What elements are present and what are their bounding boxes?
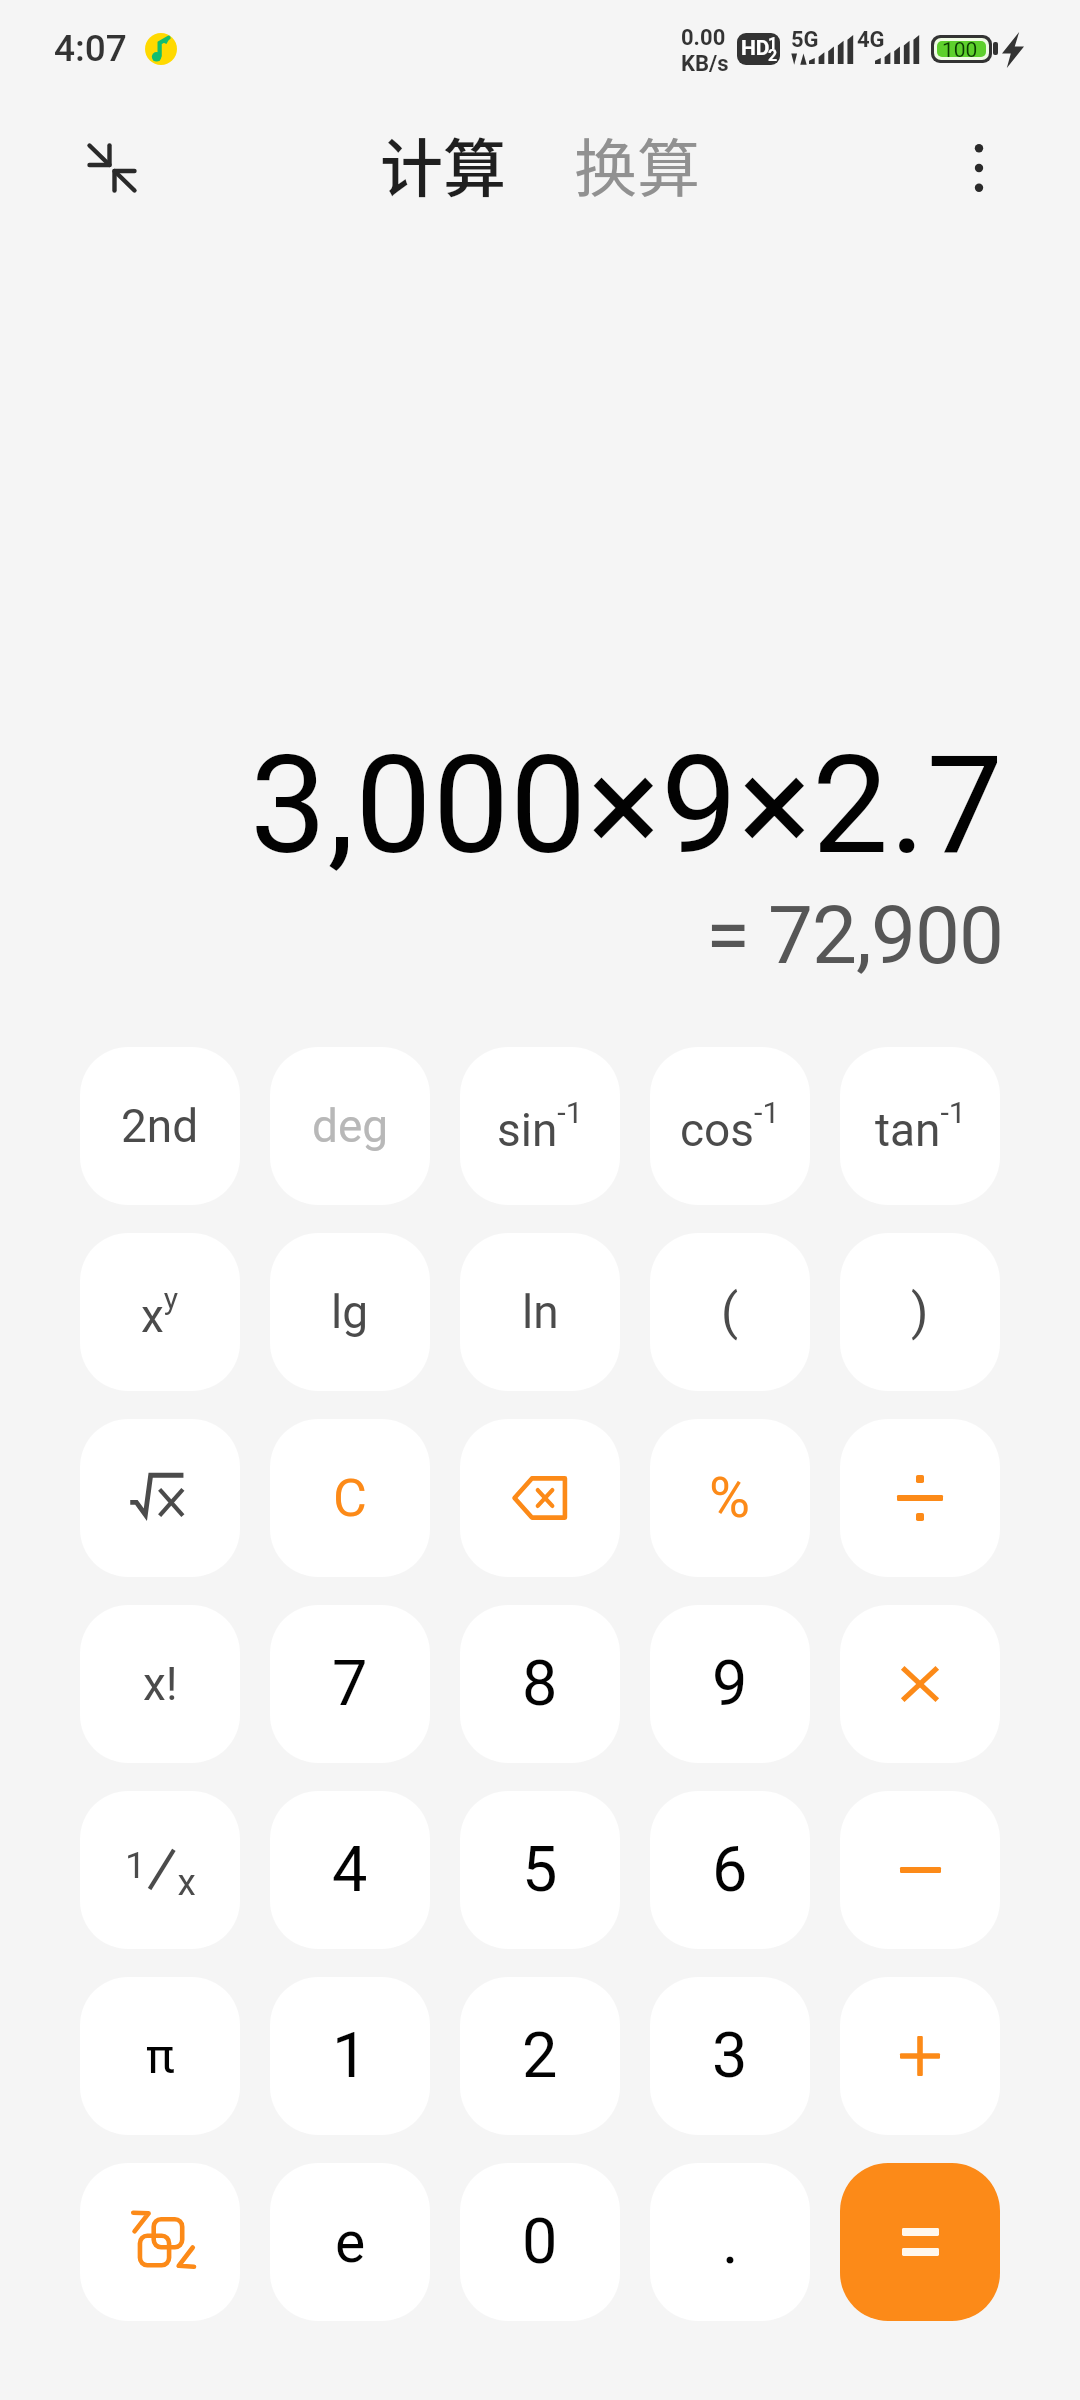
button[interactable]: 5 [460, 1791, 620, 1949]
staticText: cos-1 [680, 1095, 780, 1157]
button[interactable]: 7 [270, 1605, 430, 1763]
staticText: 100 [942, 38, 978, 63]
button[interactable]: 1 [270, 1977, 430, 2135]
button[interactable]: . [650, 2163, 810, 2321]
button[interactable]: Backspace [460, 1419, 620, 1577]
button[interactable]: ( [650, 1233, 810, 1391]
staticText: 0.00 [681, 25, 726, 51]
staticText: 8 [522, 1647, 558, 1721]
button[interactable]: π [80, 1977, 240, 2135]
button[interactable]: More options [929, 118, 1029, 218]
staticText: ( [721, 1283, 739, 1342]
staticText: 9 [712, 1647, 748, 1721]
button[interactable]: Divide [840, 1419, 1000, 1577]
button[interactable]: e [270, 2163, 430, 2321]
staticText: % [709, 1465, 751, 1531]
staticText: 1 [768, 34, 778, 53]
staticText: deg [312, 1099, 389, 1153]
staticText: . [722, 2205, 739, 2279]
staticText: π [146, 2028, 175, 2084]
staticText: lg [331, 1285, 369, 1339]
button[interactable]: 计算 [374, 108, 512, 208]
button[interactable]: 9 [650, 1605, 810, 1763]
staticText: C [333, 1468, 367, 1529]
staticText: HD [741, 36, 770, 61]
button[interactable]: Minus [840, 1791, 1000, 1949]
button[interactable]: 2 [460, 1977, 620, 2135]
staticText: 1⁄x [125, 1829, 196, 1911]
button[interactable]: xy [80, 1233, 240, 1391]
staticText: x! [143, 1657, 178, 1711]
button[interactable]: ln [460, 1233, 620, 1391]
button[interactable]: Equals [840, 2163, 1000, 2321]
button[interactable]: sin-1 [460, 1047, 620, 1205]
staticText: = 72,900 [706, 889, 1004, 983]
button[interactable]: C [270, 1419, 430, 1577]
staticText: 1 [332, 2019, 368, 2093]
staticText: 换算 [574, 118, 700, 198]
button[interactable]: cos-1 [650, 1047, 810, 1205]
button[interactable]: 2nd [80, 1047, 240, 1205]
button[interactable]: lg [270, 1233, 430, 1391]
button[interactable]: One over x [80, 1791, 240, 1949]
button[interactable]: deg [270, 1047, 430, 1205]
staticText: xy [141, 1281, 179, 1343]
button[interactable]: Square root [80, 1419, 240, 1577]
staticText: 6 [712, 1833, 748, 1907]
button[interactable]: x! [80, 1605, 240, 1763]
staticText: ln [522, 1285, 559, 1339]
staticText: 5G [791, 27, 819, 53]
staticText: 7 [332, 1647, 368, 1721]
staticText: 0 [522, 2205, 558, 2279]
staticText: 2nd [121, 1099, 199, 1153]
button[interactable]: 3 [650, 1977, 810, 2135]
staticText: 4 [332, 1833, 368, 1907]
staticText: sin-1 [497, 1095, 583, 1157]
staticText: 4G [857, 27, 885, 53]
button[interactable]: Collapse [62, 118, 162, 218]
staticText: 2 [522, 2019, 558, 2093]
staticText: 2 [768, 46, 778, 65]
button[interactable]: Plus [840, 1977, 1000, 2135]
button[interactable]: ) [840, 1233, 1000, 1391]
staticText: tan-1 [875, 1095, 966, 1157]
button[interactable]: 8 [460, 1605, 620, 1763]
staticText: e [335, 2209, 366, 2276]
staticText: ) [911, 1283, 929, 1342]
button[interactable]: 6 [650, 1791, 810, 1949]
button[interactable]: % [650, 1419, 810, 1577]
staticText: 3,000×9×2.7 [250, 726, 1004, 885]
button[interactable]: 换算 [568, 108, 706, 208]
button[interactable]: tan-1 [840, 1047, 1000, 1205]
button[interactable]: Multiply [840, 1605, 1000, 1763]
button[interactable]: 4 [270, 1791, 430, 1949]
staticText: 3 [712, 2019, 748, 2093]
button[interactable]: 0 [460, 2163, 620, 2321]
staticText: KB/s [681, 51, 729, 77]
button[interactable]: Shapes [80, 2163, 240, 2321]
staticText: 计算 [380, 118, 506, 198]
staticText: 4:07 [54, 27, 127, 70]
staticText: 5 [522, 1833, 558, 1907]
